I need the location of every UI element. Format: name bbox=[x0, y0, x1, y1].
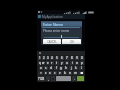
button[interactable]: 0 bbox=[80, 56, 84, 60]
staticText: q bbox=[39, 61, 41, 65]
button[interactable]: i bbox=[70, 61, 74, 65]
button[interactable]: h bbox=[64, 66, 68, 70]
staticText: 8 bbox=[71, 56, 73, 60]
staticText: CANCEL bbox=[47, 40, 57, 44]
staticText: g bbox=[60, 66, 62, 70]
staticText: , bbox=[48, 77, 49, 81]
staticText: c bbox=[54, 71, 56, 75]
button[interactable]: y bbox=[60, 61, 64, 65]
button[interactable]: p bbox=[80, 61, 84, 65]
staticText: 5 bbox=[56, 56, 58, 60]
staticText: MyApplication bbox=[42, 15, 63, 19]
button[interactable]: OK bbox=[62, 39, 81, 44]
button[interactable]: k bbox=[74, 66, 78, 70]
button[interactable]: x bbox=[48, 71, 52, 75]
staticText: h bbox=[65, 66, 67, 70]
staticText: 6 bbox=[61, 56, 63, 60]
staticText: t bbox=[56, 61, 58, 65]
button[interactable]: j bbox=[69, 66, 73, 70]
button[interactable]: n bbox=[68, 71, 72, 75]
staticText: Enter Name bbox=[43, 22, 63, 27]
staticText: Please enter name bbox=[43, 29, 70, 33]
staticText: o bbox=[76, 61, 78, 65]
staticText: p bbox=[81, 61, 83, 65]
button[interactable]: r bbox=[50, 61, 54, 65]
staticText: f bbox=[56, 66, 57, 70]
button[interactable]: o bbox=[75, 61, 79, 65]
staticText: v bbox=[59, 71, 61, 75]
staticText: z bbox=[45, 71, 47, 75]
button[interactable]: b bbox=[63, 71, 67, 75]
button[interactable]: 6 bbox=[60, 56, 64, 60]
button[interactable]: 5 bbox=[55, 56, 59, 60]
staticText: y bbox=[61, 61, 63, 65]
staticText: 0 bbox=[81, 56, 83, 60]
button[interactable]: . bbox=[72, 76, 76, 81]
button[interactable]: 9 bbox=[75, 56, 79, 60]
button[interactable]: Enter bbox=[77, 76, 84, 81]
staticText: s bbox=[45, 66, 47, 70]
staticText: m bbox=[74, 71, 77, 75]
staticText: OK bbox=[70, 40, 74, 44]
staticText: b bbox=[64, 71, 66, 75]
staticText: d bbox=[50, 66, 52, 70]
button[interactable]: t bbox=[55, 61, 59, 65]
button[interactable]: e bbox=[46, 61, 49, 65]
staticText: 7 bbox=[66, 56, 68, 60]
button[interactable]: u bbox=[65, 61, 69, 65]
button[interactable]: 3 bbox=[46, 56, 49, 60]
button[interactable]: d bbox=[49, 66, 53, 70]
staticText: ?123 bbox=[38, 77, 45, 81]
staticText: 9 bbox=[76, 56, 78, 60]
button[interactable]: l bbox=[79, 66, 83, 70]
staticText: r bbox=[51, 61, 53, 65]
staticText: . bbox=[74, 77, 75, 81]
staticText: 2 bbox=[43, 56, 45, 60]
button[interactable]: Voice input bbox=[51, 76, 55, 81]
staticText: x bbox=[49, 71, 51, 75]
staticText: a bbox=[40, 66, 42, 70]
button[interactable]: z bbox=[44, 71, 47, 75]
button[interactable]: v bbox=[58, 71, 62, 75]
button[interactable]: 1 bbox=[38, 56, 41, 60]
button[interactable]: f bbox=[54, 66, 58, 70]
button[interactable]: 8 bbox=[70, 56, 74, 60]
staticText: w bbox=[42, 61, 45, 65]
button[interactable]: Backspace bbox=[78, 71, 84, 75]
staticText: 3 bbox=[47, 56, 49, 60]
button[interactable]: 2 bbox=[42, 56, 45, 60]
button[interactable]: s bbox=[44, 66, 48, 70]
staticText: l bbox=[81, 66, 82, 70]
staticText: 4 bbox=[51, 56, 53, 60]
button[interactable]: Shift bbox=[38, 71, 43, 75]
staticText: i bbox=[72, 61, 73, 65]
staticText: 1 bbox=[39, 56, 41, 60]
button[interactable]: App icon bbox=[38, 15, 41, 18]
button[interactable]: 4 bbox=[50, 56, 54, 60]
staticText: k bbox=[75, 66, 77, 70]
button[interactable]: q bbox=[38, 61, 41, 65]
staticText: j bbox=[71, 66, 72, 70]
button[interactable]: 7 bbox=[65, 56, 69, 60]
button[interactable]: g bbox=[59, 66, 63, 70]
staticText: u bbox=[66, 61, 68, 65]
staticText: n bbox=[69, 71, 71, 75]
staticText: e bbox=[47, 61, 49, 65]
button[interactable]: a bbox=[39, 66, 43, 70]
button[interactable]: m bbox=[73, 71, 77, 75]
button[interactable]: ?123 bbox=[38, 76, 45, 81]
button[interactable]: CANCEL bbox=[43, 39, 61, 44]
button[interactable]: c bbox=[53, 71, 57, 75]
button[interactable]: w bbox=[42, 61, 45, 65]
button[interactable]: , bbox=[46, 76, 50, 81]
